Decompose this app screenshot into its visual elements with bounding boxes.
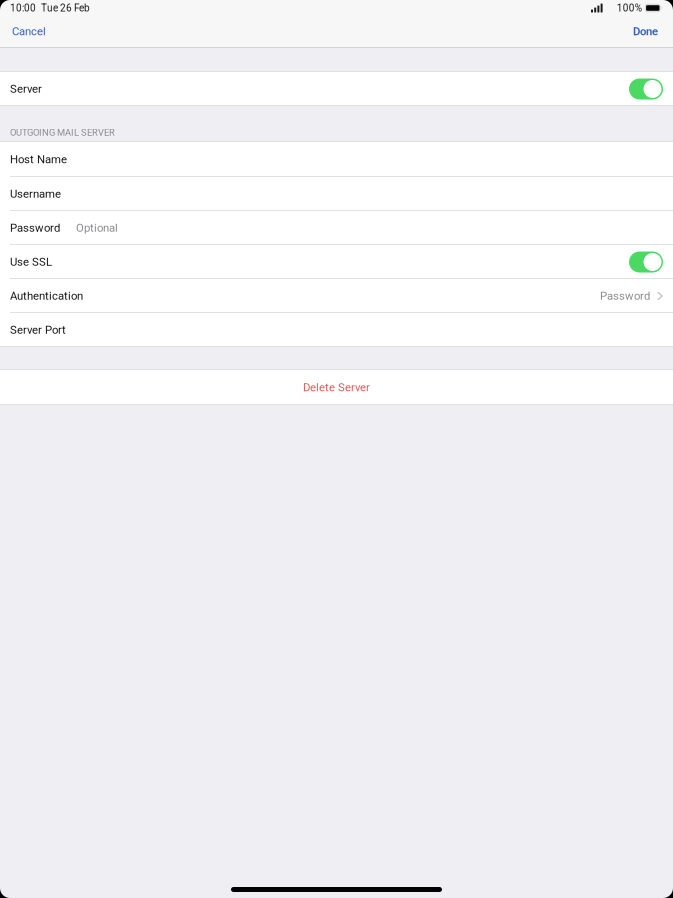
staticText: Cancel	[12, 25, 46, 38]
staticText: Done	[633, 25, 658, 38]
button[interactable]: Done	[619, 16, 673, 47]
staticText: Authentication	[10, 289, 83, 303]
staticText: Tue 26 Feb	[41, 2, 90, 14]
staticText: Username	[10, 187, 61, 201]
button[interactable]: Server	[0, 72, 673, 106]
staticText: Optional	[76, 221, 118, 235]
button[interactable]: Server Port	[0, 313, 673, 347]
button[interactable]: Cancel	[0, 16, 60, 47]
staticText: 10:00	[10, 2, 36, 14]
button[interactable]: Authentication	[0, 279, 673, 313]
staticText: Delete Server	[303, 381, 370, 394]
button[interactable]: Password	[0, 211, 673, 245]
staticText: Password	[600, 289, 650, 303]
button[interactable]: Host Name	[0, 142, 673, 177]
staticText: Password	[10, 221, 60, 235]
button[interactable]: Delete Server	[0, 370, 673, 405]
button[interactable]: Username	[0, 177, 673, 211]
staticText: OUTGOING MAIL SERVER	[10, 127, 115, 138]
button[interactable]: Use SSL	[0, 245, 673, 279]
staticText: Use SSL	[10, 255, 52, 269]
staticText: Host Name	[10, 153, 67, 166]
staticText: 100%	[617, 2, 642, 14]
staticText: Server	[10, 82, 42, 96]
staticText: Server Port	[10, 323, 66, 337]
